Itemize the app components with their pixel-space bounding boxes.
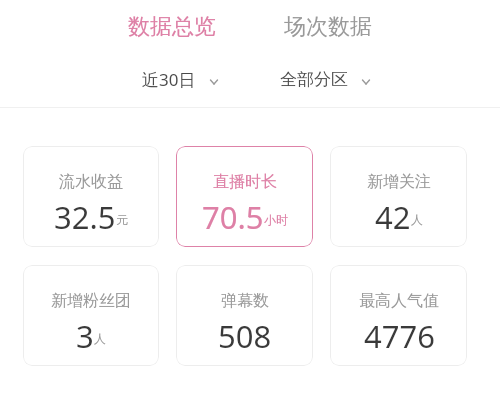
staticText: 弹幕数 [221,291,269,311]
staticText: 新增关注 [367,172,431,192]
button[interactable]: 新增关注 [330,146,467,247]
button[interactable]: 最高人气值 [330,265,467,366]
staticText: 流水收益 [59,172,123,192]
staticText: 场次数据 [284,13,372,41]
other: 展开筛选 [362,75,370,85]
button[interactable]: 直播时长 [176,146,313,247]
button[interactable]: 弹幕数 [176,265,313,366]
button[interactable]: 流水收益 [23,146,159,247]
other: 展开筛选 [210,75,218,85]
staticText: 直播时长 [213,172,277,192]
staticText: 最高人气值 [359,291,439,311]
staticText: 70.5 [202,196,264,238]
staticText: 32.5 [54,196,116,238]
staticText: 元 [116,212,128,227]
button[interactable]: 近30日 [136,60,224,99]
button[interactable]: 全部分区 [274,61,376,98]
staticText: 508 [218,315,272,357]
staticText: 人 [411,212,423,227]
staticText: 数据总览 [128,13,216,41]
staticText: 近30日 [142,68,196,91]
button[interactable]: 数据总览 [114,5,230,49]
staticText: 全部分区 [280,69,348,90]
staticText: 42 [375,196,411,238]
staticText: 小时 [264,212,288,227]
staticText: 新增粉丝团 [51,291,131,311]
staticText: 4776 [364,315,435,357]
button[interactable]: 新增粉丝团 [23,265,159,366]
staticText: 3 [76,315,94,357]
staticText: 人 [94,331,106,346]
button[interactable]: 场次数据 [270,5,386,49]
